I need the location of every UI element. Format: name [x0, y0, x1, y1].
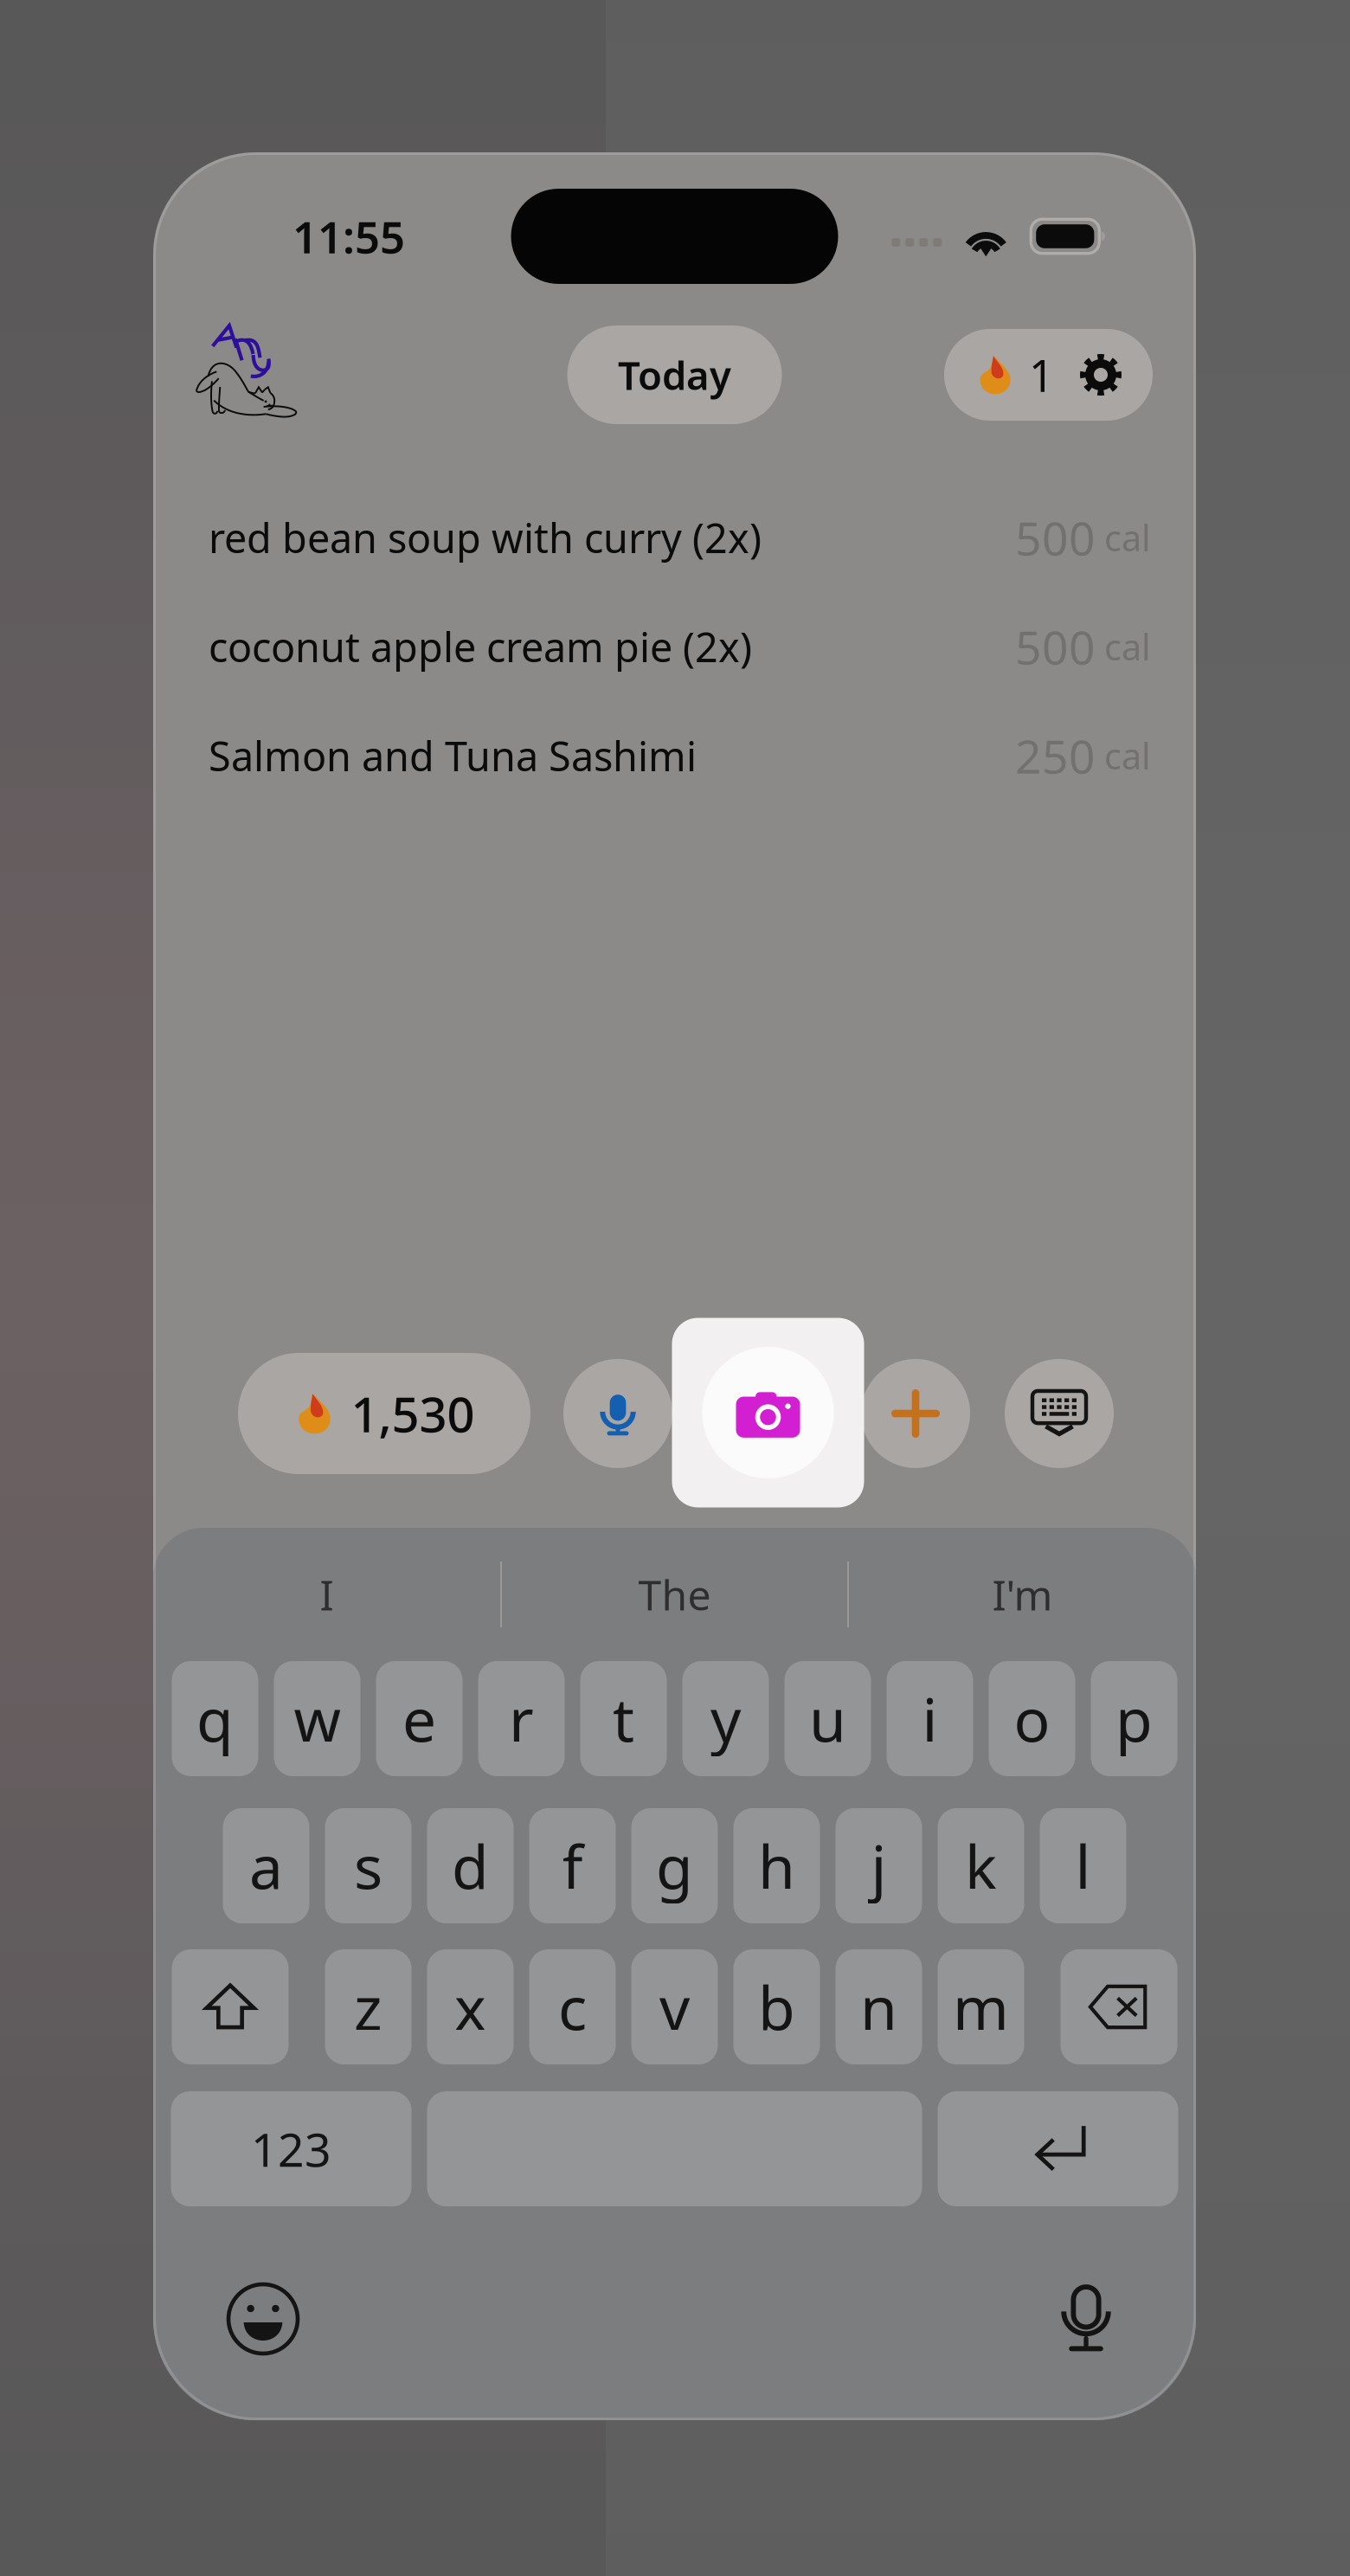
staticText: 1,530 [351, 1381, 475, 1446]
button[interactable]: 123 [171, 2091, 411, 2206]
button[interactable]: Return [938, 2091, 1178, 2206]
staticText: g [656, 1826, 693, 1906]
staticText: t [613, 1679, 634, 1759]
button[interactable]: t [580, 1661, 667, 1776]
button[interactable]: Delete [1061, 1949, 1177, 2064]
staticText: d [452, 1826, 489, 1906]
staticText: I [320, 1567, 334, 1622]
staticText: p [1115, 1679, 1153, 1759]
staticText: 500 [1015, 616, 1096, 677]
button[interactable]: 1,530 [238, 1353, 530, 1474]
staticText: 123 [251, 2118, 331, 2179]
staticText: q [196, 1679, 234, 1759]
staticText: v [659, 1967, 690, 2047]
staticText: red bean soup with curry (2x) [209, 511, 762, 564]
button[interactable]: coconut apple cream pie (2x) [153, 592, 1196, 701]
button[interactable]: Streak and settings [944, 329, 1153, 421]
staticText: 11:55 [292, 207, 405, 265]
button[interactable]: Shift [172, 1949, 289, 2064]
button[interactable]: w [274, 1661, 360, 1776]
button[interactable]: k [938, 1808, 1024, 1923]
button[interactable]: u [784, 1661, 871, 1776]
staticText: u [809, 1679, 846, 1759]
staticText: n [860, 1967, 897, 2047]
staticText: 500 [1015, 507, 1096, 568]
staticText: 250 [1015, 725, 1096, 786]
staticText: s [354, 1826, 382, 1906]
button[interactable]: e [376, 1661, 463, 1776]
button[interactable]: a [223, 1808, 309, 1923]
staticText: cal [1104, 732, 1151, 779]
button[interactable]: j [836, 1808, 922, 1923]
staticText: 1 [1029, 346, 1054, 404]
button[interactable]: red bean soup with curry (2x) [153, 483, 1196, 592]
staticText: Salmon and Tuna Sashimi [209, 729, 697, 782]
button[interactable]: v [631, 1949, 718, 2064]
button[interactable]: y [682, 1661, 769, 1776]
button[interactable]: m [938, 1949, 1024, 2064]
staticText: Today [618, 349, 731, 401]
button[interactable]: Hide keyboard [1005, 1359, 1114, 1468]
staticText: k [965, 1826, 997, 1906]
staticText: i [922, 1679, 938, 1759]
button[interactable]: i [887, 1661, 973, 1776]
button[interactable]: Today [567, 325, 782, 424]
staticText: a [249, 1826, 283, 1906]
button[interactable]: x [427, 1949, 514, 2064]
staticText: m [953, 1967, 1009, 2047]
staticText: cal [1104, 514, 1151, 561]
button[interactable]: r [478, 1661, 565, 1776]
button[interactable]: Amy [181, 320, 311, 429]
button[interactable]: z [325, 1949, 411, 2064]
staticText: j [871, 1826, 887, 1906]
button[interactable]: n [836, 1949, 922, 2064]
button[interactable]: Add food [861, 1359, 970, 1468]
staticText: w [294, 1679, 341, 1759]
button[interactable]: c [529, 1949, 616, 2064]
button[interactable]: Voice log [563, 1359, 672, 1468]
staticText: h [758, 1826, 795, 1906]
staticText: I'm [992, 1567, 1053, 1622]
staticText: e [402, 1679, 436, 1759]
staticText: r [509, 1679, 534, 1759]
staticText: cal [1104, 623, 1151, 670]
button[interactable]: o [989, 1661, 1075, 1776]
button[interactable]: b [733, 1949, 820, 2064]
button[interactable]: l [1040, 1808, 1126, 1923]
staticText: coconut apple cream pie (2x) [209, 620, 752, 673]
staticText: f [562, 1826, 583, 1906]
button[interactable]: q [172, 1661, 258, 1776]
button[interactable]: Salmon and Tuna Sashimi [153, 701, 1196, 810]
button[interactable]: g [631, 1808, 718, 1923]
staticText: z [354, 1967, 382, 2047]
staticText: The [638, 1567, 711, 1622]
staticText: y [710, 1679, 741, 1759]
staticText: o [1014, 1679, 1050, 1759]
button[interactable]: p [1091, 1661, 1177, 1776]
staticText: l [1075, 1826, 1091, 1906]
button[interactable]: Emoji [215, 2271, 311, 2367]
button[interactable]: s [325, 1808, 411, 1923]
button[interactable]: d [427, 1808, 514, 1923]
button[interactable]: f [529, 1808, 616, 1923]
staticText: c [558, 1967, 587, 2047]
button[interactable]: Take photo [672, 1318, 864, 1507]
button[interactable]: h [733, 1808, 820, 1923]
button[interactable]: Dictate [1038, 2271, 1134, 2367]
staticText: b [758, 1967, 795, 2047]
staticText: x [454, 1967, 486, 2047]
